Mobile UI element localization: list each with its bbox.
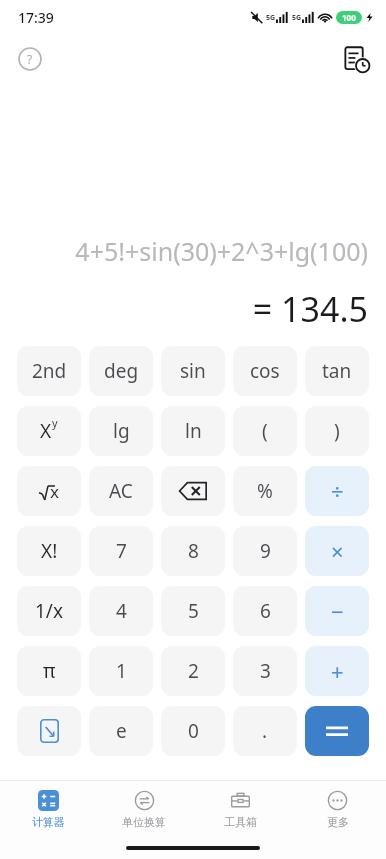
staticText: 1/x — [35, 598, 63, 624]
button[interactable]: − — [305, 586, 369, 636]
button[interactable]: x — [17, 466, 81, 516]
staticText: . — [262, 718, 268, 744]
button[interactable]: 2nd — [17, 346, 81, 396]
button[interactable]: + — [305, 646, 369, 696]
staticText: 6 — [260, 598, 271, 624]
button[interactable]: 单位换算 — [96, 781, 192, 837]
button[interactable]: 6 — [233, 586, 297, 636]
staticText: ? — [27, 51, 33, 67]
staticText: 工具箱 — [224, 815, 257, 829]
button[interactable]: Help — [18, 47, 42, 71]
staticText: + — [331, 656, 344, 686]
button[interactable] — [305, 706, 369, 756]
button[interactable]: 工具箱 — [192, 781, 289, 837]
staticText: 1 — [116, 658, 127, 684]
button[interactable]: 5 — [161, 586, 225, 636]
staticText: 0 — [188, 718, 199, 744]
button[interactable]: History — [342, 45, 370, 73]
staticText: 计算器 — [32, 815, 65, 829]
staticText: cos — [250, 358, 280, 384]
staticText: sin — [180, 358, 206, 384]
staticText: deg — [104, 358, 139, 384]
button[interactable]: 0 — [161, 706, 225, 756]
staticText: 2nd — [32, 358, 67, 384]
button[interactable]: lg — [89, 406, 153, 456]
button[interactable]: 1/x — [17, 586, 81, 636]
button[interactable]: X — [17, 406, 81, 456]
button[interactable]: % — [233, 466, 297, 516]
button[interactable]: 更多 — [289, 781, 386, 837]
staticText: 5G — [292, 13, 302, 23]
staticText: ( — [262, 418, 268, 444]
staticText: 100 — [342, 12, 356, 23]
staticText: 单位换算 — [122, 815, 166, 829]
staticText: AC — [109, 478, 133, 504]
staticText: = 134.5 — [18, 286, 368, 332]
button[interactable]: cos — [233, 346, 297, 396]
staticText: 17:39 — [18, 8, 54, 27]
button[interactable]: 4 — [89, 586, 153, 636]
staticText: e — [116, 718, 127, 744]
staticText: 4 — [116, 598, 127, 624]
staticText: − — [331, 596, 344, 626]
button[interactable]: tan — [305, 346, 369, 396]
button[interactable]: 2 — [161, 646, 225, 696]
button[interactable]: Collapse keypad — [17, 706, 81, 756]
staticText: % — [257, 478, 273, 504]
staticText: X — [40, 418, 52, 444]
staticText: 更多 — [327, 815, 349, 829]
button[interactable]: Backspace — [161, 466, 225, 516]
button[interactable]: ln — [161, 406, 225, 456]
staticText: 9 — [260, 538, 271, 564]
staticText: 2 — [188, 658, 199, 684]
staticText: ) — [334, 418, 340, 444]
staticText: π — [43, 658, 56, 684]
staticText: 3 — [260, 658, 271, 684]
staticText: 4+5!+sin(30)+2^3+lg(100) — [18, 234, 368, 268]
button[interactable]: . — [233, 706, 297, 756]
button[interactable]: deg — [89, 346, 153, 396]
button[interactable]: 3 — [233, 646, 297, 696]
staticText: × — [331, 536, 344, 566]
button[interactable]: π — [17, 646, 81, 696]
button[interactable]: e — [89, 706, 153, 756]
staticText: 5G — [266, 13, 276, 23]
button[interactable]: 1 — [89, 646, 153, 696]
staticText: X! — [41, 538, 58, 564]
button[interactable]: ÷ — [305, 466, 369, 516]
staticText: 8 — [188, 538, 199, 564]
staticText: y — [52, 415, 58, 430]
button[interactable]: ) — [305, 406, 369, 456]
staticText: 7 — [116, 538, 127, 564]
button[interactable]: X! — [17, 526, 81, 576]
button[interactable]: AC — [89, 466, 153, 516]
button[interactable]: 7 — [89, 526, 153, 576]
staticText: lg — [113, 418, 130, 444]
staticText: 5 — [188, 598, 199, 624]
button[interactable]: 计算器 — [0, 781, 96, 837]
button[interactable]: 8 — [161, 526, 225, 576]
staticText: x — [50, 480, 59, 503]
staticText: tan — [322, 358, 352, 384]
staticText: ln — [185, 418, 202, 444]
staticText: ÷ — [331, 476, 344, 506]
button[interactable]: 9 — [233, 526, 297, 576]
button[interactable]: × — [305, 526, 369, 576]
button[interactable]: sin — [161, 346, 225, 396]
button[interactable]: ( — [233, 406, 297, 456]
